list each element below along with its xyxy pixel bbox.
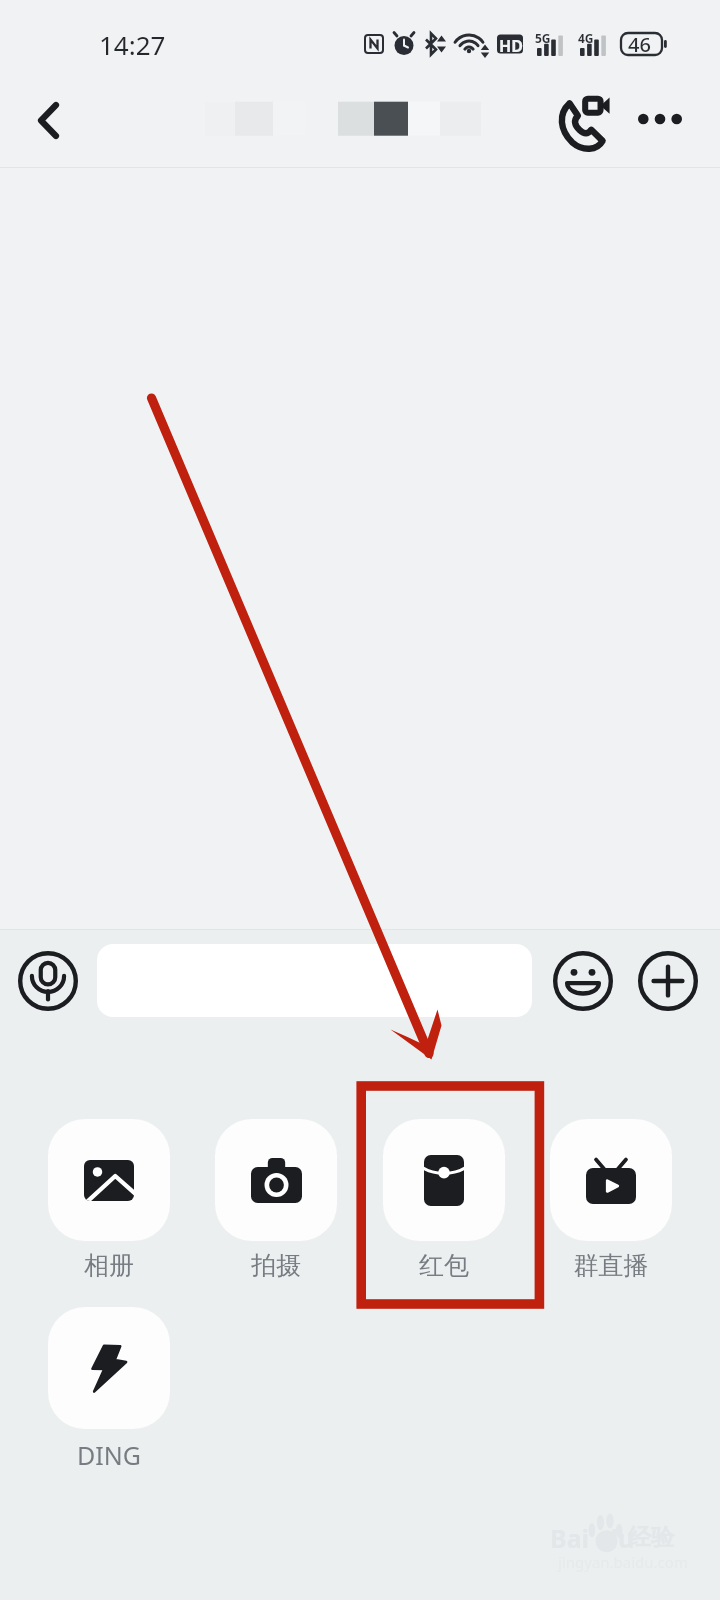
staticText: HD bbox=[499, 35, 523, 57]
button[interactable]: 红包 bbox=[383, 1119, 505, 1281]
staticText: 5G bbox=[535, 30, 551, 46]
button[interactable]: Add attachment bbox=[628, 941, 708, 1021]
button[interactable]: More options bbox=[622, 81, 698, 157]
staticText: 红包 bbox=[383, 1250, 505, 1281]
staticText: 经验 bbox=[628, 1523, 674, 1552]
staticText: 14:27 bbox=[99, 27, 166, 62]
staticText: 4G bbox=[578, 30, 594, 46]
button[interactable]: Voice message bbox=[8, 941, 88, 1021]
staticText: 群直播 bbox=[550, 1250, 672, 1281]
button[interactable]: DING bbox=[48, 1307, 170, 1472]
staticText: DING bbox=[48, 1438, 170, 1472]
staticText: 46 bbox=[628, 31, 651, 58]
button[interactable]: 拍摄 bbox=[215, 1119, 337, 1281]
button[interactable]: 群直播 bbox=[550, 1119, 672, 1281]
staticText: 相册 bbox=[48, 1250, 170, 1281]
staticText: Bai du bbox=[550, 1521, 635, 1555]
button[interactable]: Message input bbox=[97, 944, 532, 1017]
staticText: 拍摄 bbox=[215, 1250, 337, 1281]
button[interactable]: Video call bbox=[544, 85, 620, 161]
button[interactable]: Back bbox=[9, 81, 87, 159]
button[interactable]: 相册 bbox=[48, 1119, 170, 1281]
button[interactable]: Emoji bbox=[543, 941, 623, 1021]
